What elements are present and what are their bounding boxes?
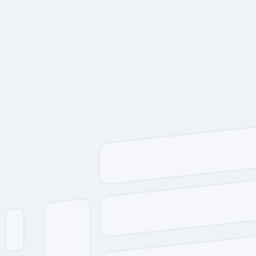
button[interactable]: Row 2	[100, 208, 256, 248]
button[interactable]: Badge	[6, 211, 24, 253]
button[interactable]: Row 1	[99, 154, 256, 196]
